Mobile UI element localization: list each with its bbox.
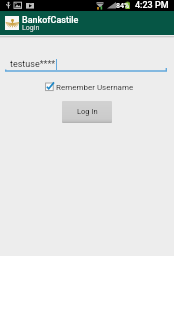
button[interactable]: testuse**** bbox=[5, 55, 167, 72]
staticText: 4:23 PM bbox=[135, 0, 169, 11]
staticText: BankofCastile bbox=[22, 15, 79, 26]
staticText: testuse**** bbox=[10, 59, 56, 70]
button[interactable]: Remember Username bbox=[45, 82, 134, 93]
staticText: 84% bbox=[116, 2, 130, 10]
staticText: Log In bbox=[77, 107, 98, 116]
button[interactable]: Log In bbox=[62, 101, 112, 123]
staticText: Login bbox=[22, 24, 40, 32]
staticText: Remember Username bbox=[56, 83, 134, 92]
